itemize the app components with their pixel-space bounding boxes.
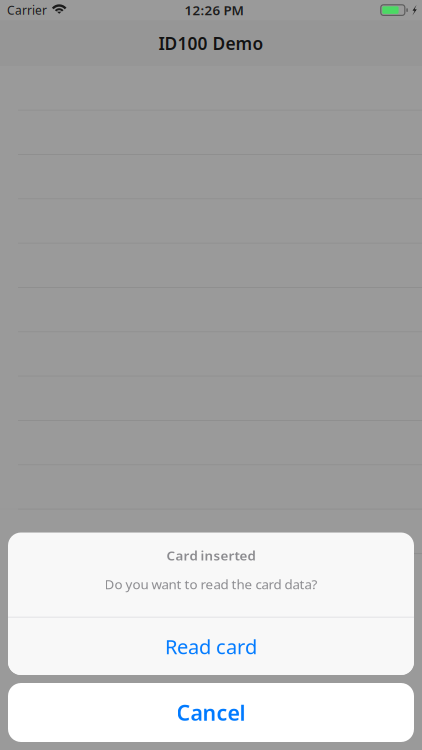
staticText: Carrier [7, 2, 47, 18]
button[interactable]: Read card [8, 618, 414, 675]
button[interactable]: Row [0, 510, 422, 554]
staticText: ID100 Demo [158, 32, 263, 55]
staticText: 12:26 PM [184, 1, 243, 19]
button[interactable]: Cancel [8, 683, 414, 742]
staticText: Card inserted [166, 546, 255, 564]
staticText: Cancel [176, 698, 245, 727]
staticText: Do you want to read the card data? [104, 575, 317, 593]
staticText: Read card [165, 633, 257, 660]
